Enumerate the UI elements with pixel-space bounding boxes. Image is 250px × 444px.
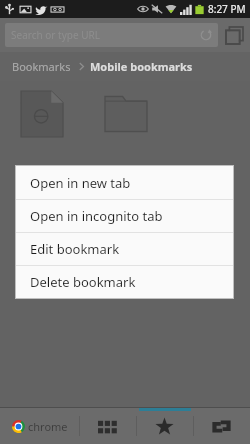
button[interactable] [84,91,167,161]
button[interactable]: Other devices [193,408,250,444]
staticText: Mobile bookmarks [90,59,193,74]
button[interactable]: chrome [0,408,79,444]
staticText: Open in new tab [30,174,131,192]
staticText: Search or type URL [11,28,100,42]
button[interactable] [0,91,84,161]
staticText: Bookmarks [12,59,71,74]
button[interactable]: Bookmarks [136,408,193,444]
staticText: chrome [28,419,68,434]
button[interactable]: Bookmarks [10,55,73,78]
button[interactable]: Open in incognito tab [16,200,233,232]
button[interactable]: Edit bookmark [16,233,233,265]
button[interactable]: Reload [200,29,212,41]
staticText: Edit bookmark [30,240,120,258]
staticText: Open in incognito tab [30,207,163,225]
button[interactable]: Most visited [79,408,136,444]
button[interactable]: Open in new tab [16,166,233,199]
staticText: 8:27 PM [208,2,246,16]
staticText: Delete bookmark [30,273,136,291]
button[interactable]: Tabs [223,24,245,46]
button[interactable]: Delete bookmark [16,266,233,298]
